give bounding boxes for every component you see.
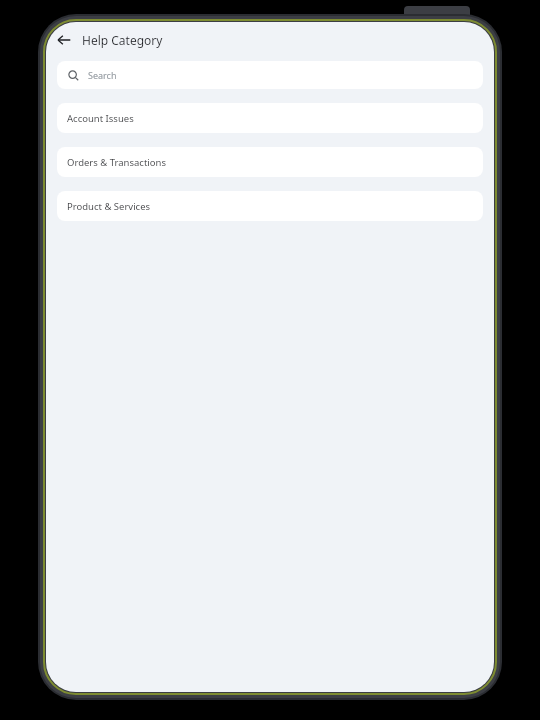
button[interactable]: Account Issues [57,103,483,133]
button[interactable]: Search [57,61,483,89]
staticText: Product & Services [67,200,151,213]
button[interactable]: Orders & Transactions [57,147,483,177]
staticText: Account Issues [67,112,134,125]
button[interactable]: Back [50,26,78,54]
button[interactable]: Product & Services [57,191,483,221]
staticText: Help Category [82,32,163,48]
staticText: Orders & Transactions [67,156,166,169]
staticText: Search [88,69,117,81]
